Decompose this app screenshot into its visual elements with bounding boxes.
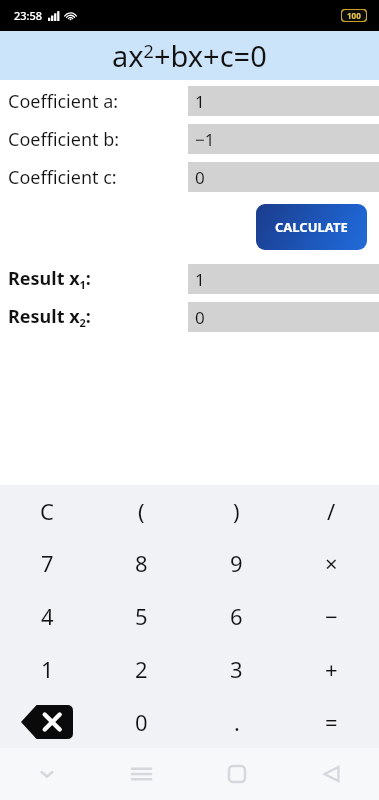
button[interactable]: Home bbox=[189, 748, 284, 800]
staticText: 1 bbox=[195, 268, 205, 291]
staticText: ( bbox=[138, 496, 145, 526]
button[interactable]: 0 bbox=[188, 162, 379, 192]
staticText: CALCULATE bbox=[275, 218, 348, 236]
button[interactable]: 3 bbox=[189, 642, 284, 695]
button[interactable]: 7 bbox=[0, 537, 94, 589]
staticText: Coefficient a: bbox=[8, 89, 119, 114]
staticText: 1 bbox=[195, 90, 205, 113]
button[interactable]: 8 bbox=[94, 537, 189, 589]
button[interactable]: 4 bbox=[0, 589, 94, 642]
staticText: × bbox=[325, 548, 338, 578]
button[interactable]: Menu bbox=[94, 748, 189, 800]
button[interactable]: 9 bbox=[189, 537, 284, 589]
button[interactable]: 1 bbox=[188, 264, 379, 294]
button[interactable]: 0 bbox=[94, 695, 189, 748]
staticText: / bbox=[327, 496, 336, 526]
staticText: 23:58 bbox=[14, 8, 43, 23]
staticText: 100 bbox=[347, 10, 361, 21]
staticText: 9 bbox=[230, 548, 243, 578]
button[interactable]: ) bbox=[189, 485, 284, 537]
button[interactable]: 2 bbox=[94, 642, 189, 695]
button[interactable]: 1 bbox=[0, 642, 94, 695]
staticText: . bbox=[234, 707, 240, 737]
staticText: = bbox=[325, 707, 338, 737]
staticText: Result x1: bbox=[8, 266, 91, 292]
button[interactable]: 1 bbox=[188, 86, 379, 116]
button[interactable]: − bbox=[284, 589, 379, 642]
staticText: 4 bbox=[41, 601, 54, 631]
staticText: −1 bbox=[195, 128, 215, 151]
staticText: 8 bbox=[135, 548, 148, 578]
button[interactable]: = bbox=[284, 695, 379, 748]
button[interactable]: . bbox=[189, 695, 284, 748]
button[interactable]: Back bbox=[284, 748, 379, 800]
staticText: 3 bbox=[230, 654, 243, 684]
button[interactable]: ( bbox=[94, 485, 189, 537]
staticText: 6 bbox=[230, 601, 243, 631]
button[interactable]: 5 bbox=[94, 589, 189, 642]
staticText: 1 bbox=[41, 654, 54, 684]
staticText: 7 bbox=[41, 548, 54, 578]
staticText: 5 bbox=[135, 601, 148, 631]
button[interactable]: −1 bbox=[188, 124, 379, 154]
staticText: 0 bbox=[135, 707, 148, 737]
staticText: − bbox=[325, 601, 338, 631]
button[interactable]: 0 bbox=[188, 302, 379, 332]
staticText: Coefficient c: bbox=[8, 165, 117, 190]
button[interactable]: × bbox=[284, 537, 379, 589]
staticText: ax2+bx+c=0 bbox=[112, 36, 267, 75]
button[interactable]: Backspace bbox=[0, 695, 94, 748]
button[interactable]: + bbox=[284, 642, 379, 695]
staticText: 0 bbox=[195, 306, 205, 329]
staticText: 2 bbox=[135, 654, 148, 684]
button[interactable]: / bbox=[284, 485, 379, 537]
staticText: + bbox=[325, 654, 338, 684]
button[interactable]: CALCULATE bbox=[256, 204, 367, 250]
staticText: Coefficient b: bbox=[8, 127, 120, 152]
staticText: ) bbox=[233, 496, 240, 526]
staticText: 0 bbox=[195, 166, 205, 189]
button[interactable]: C bbox=[0, 485, 94, 537]
staticText: C bbox=[40, 496, 54, 526]
staticText: Result x2: bbox=[8, 304, 91, 330]
button[interactable]: 6 bbox=[189, 589, 284, 642]
